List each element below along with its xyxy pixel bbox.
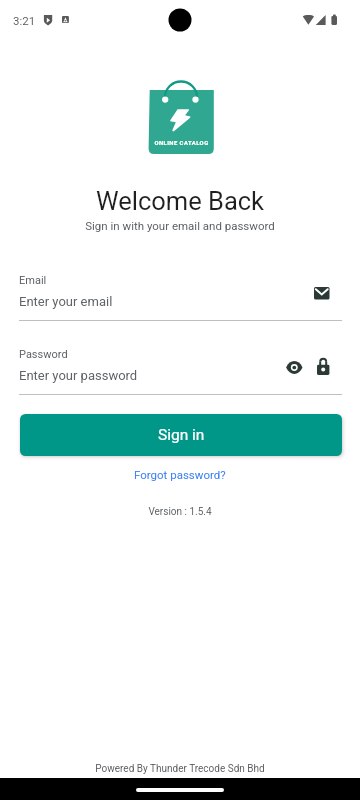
staticText: Email [19,274,47,287]
staticText: Welcome Back [0,186,360,216]
staticText: Forgot password? [134,468,226,481]
button[interactable]: Show password [282,355,307,380]
button[interactable]: Email [19,270,342,321]
staticText: Sign in [158,426,205,444]
other: Password [311,355,336,380]
button[interactable]: Password [19,344,342,395]
staticText: Sign in with your email and password [0,219,360,232]
staticText: Password [19,348,68,361]
staticText: Enter your email [19,294,113,309]
staticText: Version : 1.5.4 [0,506,360,518]
other: Email [308,281,334,307]
staticText: 3:21 [13,14,36,27]
button[interactable]: Forgot password? [126,464,234,485]
staticText: Powered By Thunder Trecode Sdn Bhd [0,763,360,775]
button[interactable]: Sign in [20,414,342,456]
staticText: Enter your password [19,368,138,383]
staticText: ONLINE CATALOG [149,140,214,147]
